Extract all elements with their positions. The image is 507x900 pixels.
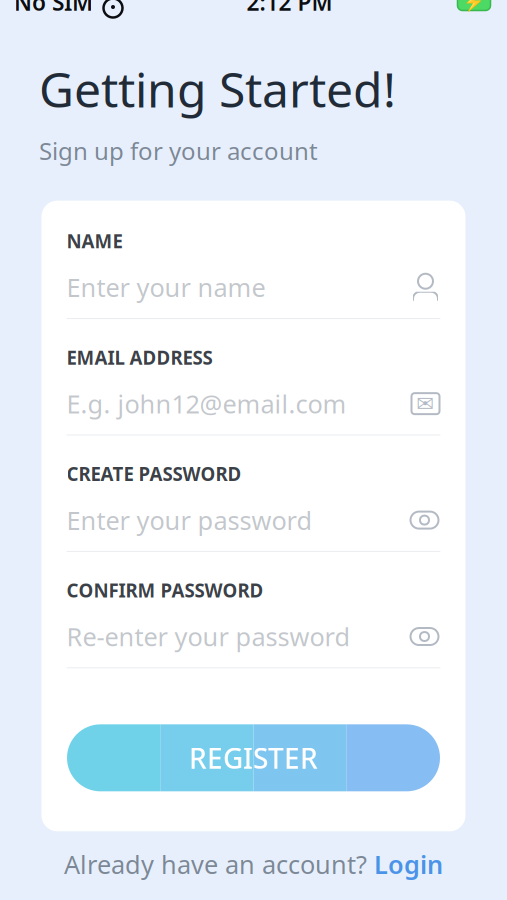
staticText: ⚡ xyxy=(463,0,485,12)
staticText: EMAIL ADDRESS xyxy=(66,345,212,370)
staticText: Enter your name xyxy=(66,270,265,304)
staticText: 2:12 PM xyxy=(246,0,332,17)
staticText: Enter your password xyxy=(66,503,312,537)
staticText: CREATE PASSWORD xyxy=(66,461,241,486)
button[interactable]: Show password xyxy=(408,621,440,651)
staticText: NAME xyxy=(66,229,122,253)
staticText: No SIM xyxy=(14,0,93,17)
staticText: Re-enter your password xyxy=(66,620,350,653)
staticText: Sign up for your account xyxy=(39,135,318,167)
staticText: CONFIRM PASSWORD xyxy=(66,578,263,603)
staticText: REGISTER xyxy=(189,739,318,776)
staticText: Login xyxy=(374,847,443,881)
staticText: ✉ xyxy=(416,392,434,416)
button[interactable]: Already have an account? xyxy=(44,839,463,889)
staticText: Getting Started! xyxy=(39,57,396,121)
button[interactable]: REGISTER xyxy=(67,724,440,791)
staticText: Already have an account? xyxy=(64,847,374,881)
staticText: E.g. john12@email.com xyxy=(66,387,346,420)
button[interactable]: Show password xyxy=(408,505,440,535)
